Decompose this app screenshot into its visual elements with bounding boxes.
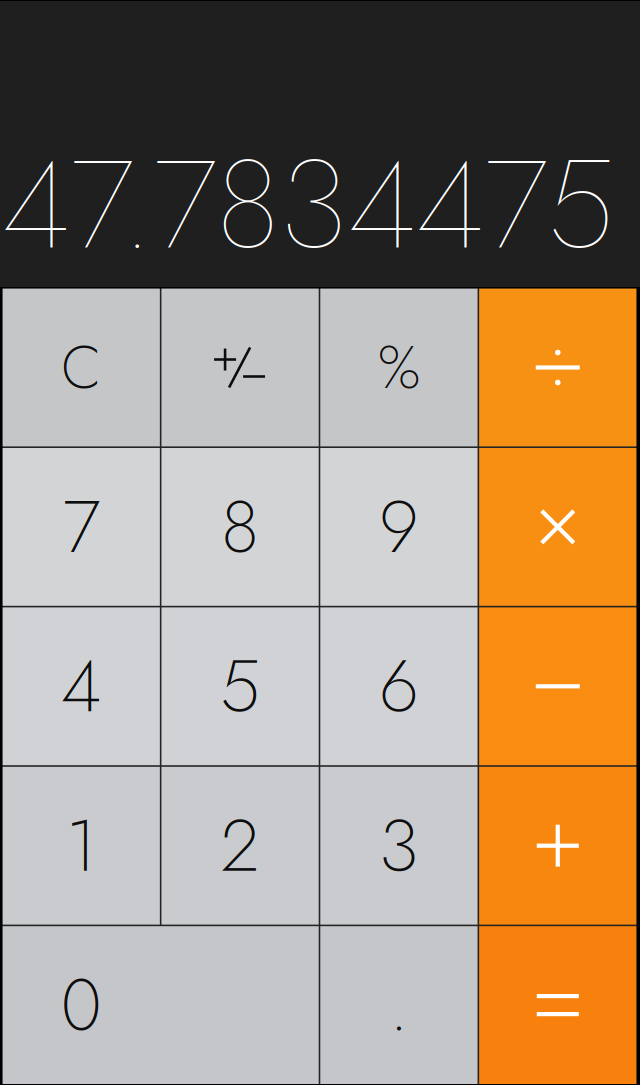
button[interactable]: %: [320, 289, 477, 446]
button[interactable]: Divide: [479, 289, 636, 446]
button[interactable]: Multiply: [479, 448, 636, 606]
staticText: 8: [221, 475, 259, 579]
staticText: 5: [220, 634, 260, 738]
button[interactable]: 8: [161, 448, 319, 606]
staticText: %: [378, 325, 420, 410]
button[interactable]: 4: [3, 607, 160, 765]
staticText: 9: [379, 475, 419, 579]
staticText: 0: [61, 953, 102, 1057]
staticText: 47.7834475: [2, 116, 615, 293]
staticText: .: [389, 953, 409, 1057]
staticText: 3: [379, 794, 419, 898]
staticText: 4: [61, 634, 102, 738]
button[interactable]: Add: [479, 767, 636, 925]
button[interactable]: 5: [161, 607, 319, 765]
button[interactable]: Subtract: [479, 607, 636, 765]
button[interactable]: Equals: [479, 926, 636, 1084]
button[interactable]: 7: [3, 448, 160, 606]
button[interactable]: 9: [320, 448, 477, 606]
staticText: 7: [63, 475, 100, 579]
button[interactable]: Decimal point: [320, 926, 477, 1084]
button[interactable]: Plus minus: [161, 289, 319, 446]
button[interactable]: 2: [161, 767, 319, 925]
staticText: C: [61, 325, 101, 410]
staticText: 2: [221, 794, 260, 898]
staticText: 6: [379, 634, 419, 738]
button[interactable]: 6: [320, 607, 477, 765]
button[interactable]: 3: [320, 767, 477, 925]
button[interactable]: 1: [3, 767, 160, 925]
button[interactable]: 0: [3, 926, 319, 1084]
button[interactable]: C: [3, 289, 160, 446]
staticText: 1: [66, 794, 97, 898]
